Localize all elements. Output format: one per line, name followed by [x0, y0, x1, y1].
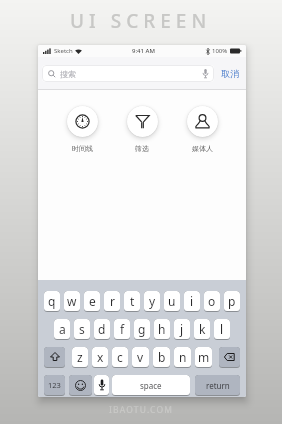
- button[interactable]: 搜索: [42, 65, 214, 82]
- button[interactable]: f: [114, 319, 130, 339]
- staticText: m: [198, 349, 210, 365]
- staticText: j: [180, 321, 184, 337]
- button[interactable]: h: [154, 319, 170, 339]
- staticText: x: [97, 349, 104, 365]
- staticText: k: [199, 321, 206, 337]
- button[interactable]: a: [54, 319, 70, 339]
- staticText: b: [158, 349, 166, 365]
- staticText: 媒体人: [192, 144, 213, 153]
- staticText: i: [190, 293, 194, 309]
- button[interactable]: [219, 347, 240, 367]
- button[interactable]: x: [92, 347, 108, 367]
- button[interactable]: 时间线: [52, 106, 112, 153]
- staticText: 100%: [212, 47, 228, 55]
- button[interactable]: 取消: [214, 68, 246, 79]
- button[interactable]: r: [104, 291, 120, 311]
- staticText: c: [117, 349, 123, 365]
- button[interactable]: w: [64, 291, 80, 311]
- button[interactable]: 媒体人: [172, 106, 232, 153]
- button[interactable]: [69, 375, 92, 395]
- button[interactable]: 筛选: [112, 106, 172, 153]
- staticText: e: [89, 293, 96, 309]
- staticText: 筛选: [135, 144, 149, 153]
- button[interactable]: e: [84, 291, 100, 311]
- button[interactable]: z: [72, 347, 88, 367]
- staticText: s: [79, 321, 85, 337]
- staticText: o: [208, 293, 216, 309]
- staticText: q: [48, 293, 56, 309]
- staticText: r: [110, 293, 115, 309]
- button[interactable]: n: [174, 347, 191, 367]
- button[interactable]: c: [112, 347, 128, 367]
- staticText: return: [206, 380, 230, 391]
- button[interactable]: b: [153, 347, 170, 367]
- staticText: n: [179, 349, 187, 365]
- staticText: y: [149, 293, 156, 309]
- button[interactable]: d: [94, 319, 110, 339]
- staticText: f: [120, 321, 125, 337]
- staticText: 9:41 AM: [132, 47, 155, 55]
- button[interactable]: k: [194, 319, 210, 339]
- button[interactable]: o: [204, 291, 220, 311]
- button[interactable]: s: [74, 319, 90, 339]
- button[interactable]: p: [224, 291, 240, 311]
- staticText: 取消: [221, 68, 239, 79]
- staticText: d: [98, 321, 106, 337]
- staticText: h: [158, 321, 166, 337]
- staticText: a: [59, 321, 66, 337]
- button[interactable]: m: [195, 347, 212, 367]
- staticText: w: [67, 293, 77, 309]
- staticText: g: [138, 321, 146, 337]
- staticText: l: [220, 321, 224, 337]
- button[interactable]: q: [44, 291, 60, 311]
- button[interactable]: u: [164, 291, 180, 311]
- button[interactable]: y: [144, 291, 160, 311]
- button[interactable]: l: [214, 319, 230, 339]
- staticText: Sketch: [54, 47, 73, 55]
- staticText: IBAOTU.COM: [109, 404, 174, 416]
- staticText: t: [130, 293, 135, 309]
- button[interactable]: g: [134, 319, 150, 339]
- button[interactable]: space: [112, 375, 190, 395]
- button[interactable]: 123: [44, 375, 65, 395]
- button[interactable]: [44, 347, 65, 367]
- staticText: u: [168, 293, 176, 309]
- staticText: UI SCREEN: [70, 8, 212, 34]
- staticText: 123: [48, 380, 61, 390]
- staticText: v: [137, 349, 144, 365]
- button[interactable]: [94, 375, 109, 395]
- button[interactable]: i: [184, 291, 200, 311]
- staticText: 搜索: [60, 69, 76, 79]
- button[interactable]: t: [124, 291, 140, 311]
- staticText: space: [140, 380, 162, 391]
- staticText: 时间线: [72, 144, 93, 153]
- staticText: p: [228, 293, 236, 309]
- staticText: z: [77, 349, 83, 365]
- button[interactable]: j: [174, 319, 190, 339]
- button[interactable]: v: [132, 347, 149, 367]
- button[interactable]: return: [195, 375, 240, 395]
